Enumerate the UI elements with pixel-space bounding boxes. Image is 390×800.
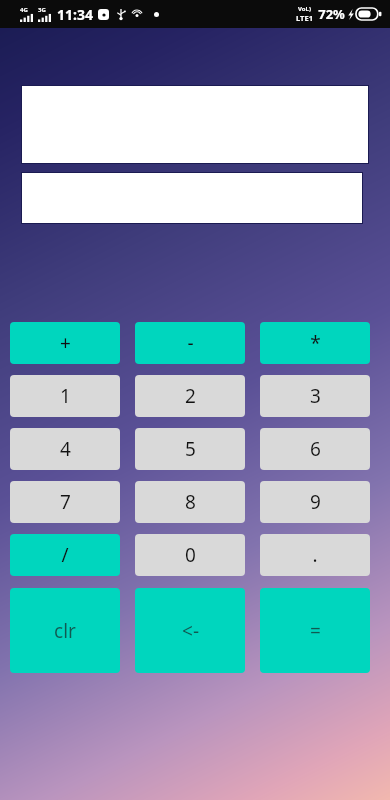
- staticText: 72%: [318, 5, 345, 23]
- button[interactable]: =: [260, 588, 370, 673]
- staticText: 5: [185, 436, 196, 462]
- staticText: 0: [185, 542, 196, 568]
- staticText: 4G: [20, 6, 28, 14]
- staticText: 11:34: [57, 5, 93, 24]
- staticText: LTE1: [296, 13, 313, 23]
- staticText: 3G: [38, 6, 46, 14]
- button[interactable]: +: [10, 322, 120, 364]
- button[interactable]: 0: [135, 534, 245, 576]
- button[interactable]: 9: [260, 481, 370, 523]
- button[interactable]: clr: [10, 588, 120, 673]
- button[interactable]: -: [135, 322, 245, 364]
- staticText: 2: [185, 383, 196, 409]
- button[interactable]: 2: [135, 375, 245, 417]
- staticText: =: [310, 618, 321, 644]
- button[interactable]: 7: [10, 481, 120, 523]
- staticText: /: [61, 542, 69, 568]
- button[interactable]: .: [260, 534, 370, 576]
- button[interactable]: 4: [10, 428, 120, 470]
- staticText: 4: [60, 436, 71, 462]
- button[interactable]: 1: [10, 375, 120, 417]
- staticText: 9: [310, 489, 321, 515]
- staticText: 7: [60, 489, 71, 515]
- button[interactable]: 6: [260, 428, 370, 470]
- button[interactable]: 3: [260, 375, 370, 417]
- button[interactable]: *: [260, 322, 370, 364]
- staticText: 8: [185, 489, 196, 515]
- staticText: <-: [182, 618, 199, 644]
- staticText: 3: [310, 383, 321, 409]
- button[interactable]: 5: [135, 428, 245, 470]
- button[interactable]: <-: [135, 588, 245, 673]
- staticText: +: [60, 330, 71, 356]
- staticText: .: [312, 542, 318, 568]
- staticText: clr: [54, 618, 76, 644]
- staticText: -: [187, 330, 194, 356]
- button[interactable]: /: [10, 534, 120, 576]
- staticText: *: [310, 330, 321, 356]
- staticText: 6: [310, 436, 321, 462]
- button[interactable]: 8: [135, 481, 245, 523]
- staticText: 1: [60, 383, 71, 409]
- staticText: VoL): [298, 5, 311, 13]
